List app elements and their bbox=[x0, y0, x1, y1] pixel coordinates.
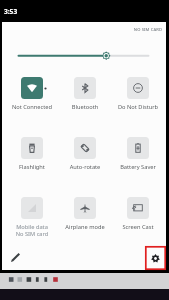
staticText: Battery Saver bbox=[112, 163, 164, 171]
button[interactable]: Battery Saver bbox=[112, 137, 164, 171]
staticText: Screen Cast bbox=[112, 223, 164, 231]
button[interactable]: Do Not Disturb bbox=[112, 77, 164, 111]
staticText: NO SIM CARD bbox=[2, 27, 162, 33]
button[interactable]: Edit bbox=[6, 248, 24, 266]
button[interactable]: Mobile data No SIM card bbox=[6, 197, 58, 238]
button[interactable]: Settings bbox=[145, 246, 166, 270]
button[interactable]: Bluetooth bbox=[59, 77, 111, 111]
staticText: Mobile data No SIM card bbox=[6, 223, 58, 238]
button[interactable]: Auto-rotate bbox=[59, 137, 111, 171]
button[interactable]: Not Connected bbox=[6, 77, 58, 111]
staticText: Airplane mode bbox=[59, 223, 111, 231]
staticText: Not Connected bbox=[6, 103, 58, 111]
staticText: 3:53 bbox=[4, 7, 18, 16]
button[interactable]: Flashlight bbox=[6, 137, 58, 171]
staticText: Do Not Disturb bbox=[112, 103, 164, 111]
staticText: Flashlight bbox=[6, 163, 58, 171]
button[interactable]: Airplane mode bbox=[59, 197, 111, 231]
staticText: Auto-rotate bbox=[59, 163, 111, 171]
button[interactable]: Screen Cast bbox=[112, 197, 164, 231]
staticText: Bluetooth bbox=[59, 103, 111, 111]
